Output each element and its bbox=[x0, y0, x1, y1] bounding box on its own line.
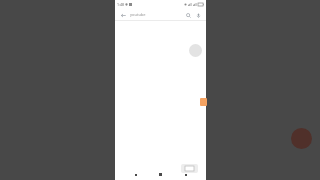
button[interactable]: youtube bbox=[130, 8, 184, 21]
button[interactable]: Recent apps bbox=[181, 170, 190, 179]
button[interactable]: Orange indicator bbox=[200, 98, 207, 106]
button[interactable]: Search bbox=[184, 11, 192, 19]
button[interactable]: Home bbox=[156, 170, 165, 179]
button[interactable]: Back bbox=[119, 11, 127, 19]
button[interactable]: Back bbox=[131, 170, 140, 179]
button[interactable]: Voice search bbox=[194, 11, 202, 19]
button[interactable]: Screen recorder bbox=[181, 164, 198, 173]
button[interactable]: Floating bubble bbox=[189, 44, 202, 57]
staticText: youtube bbox=[130, 12, 146, 17]
staticText: 1:48 bbox=[117, 2, 124, 7]
